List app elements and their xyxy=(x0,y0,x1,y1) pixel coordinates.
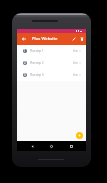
staticText: 4 m xyxy=(73,61,78,65)
button[interactable]: 1 xyxy=(17,45,86,57)
staticText: Plan step 1 xyxy=(30,49,73,53)
button[interactable]: 3 xyxy=(17,69,86,81)
button[interactable]: Back xyxy=(20,35,28,43)
staticText: Plan step 3 xyxy=(30,73,73,77)
staticText: 3 xyxy=(24,73,26,77)
button[interactable]: Recents xyxy=(67,142,76,151)
staticText: 4 m xyxy=(73,73,78,77)
staticText: Plus Website xyxy=(32,36,58,42)
staticText: 2 xyxy=(24,61,26,65)
button[interactable]: Edit xyxy=(70,35,78,43)
button[interactable]: Back xyxy=(28,142,37,151)
staticText: 4 m xyxy=(73,49,78,53)
button[interactable]: Delete xyxy=(78,35,86,43)
button[interactable]: 2 xyxy=(17,57,86,69)
staticText: 1 xyxy=(24,49,26,53)
button[interactable]: Add xyxy=(76,132,83,139)
staticText: Plan step 2 xyxy=(30,61,73,65)
button[interactable]: Home xyxy=(47,142,56,151)
